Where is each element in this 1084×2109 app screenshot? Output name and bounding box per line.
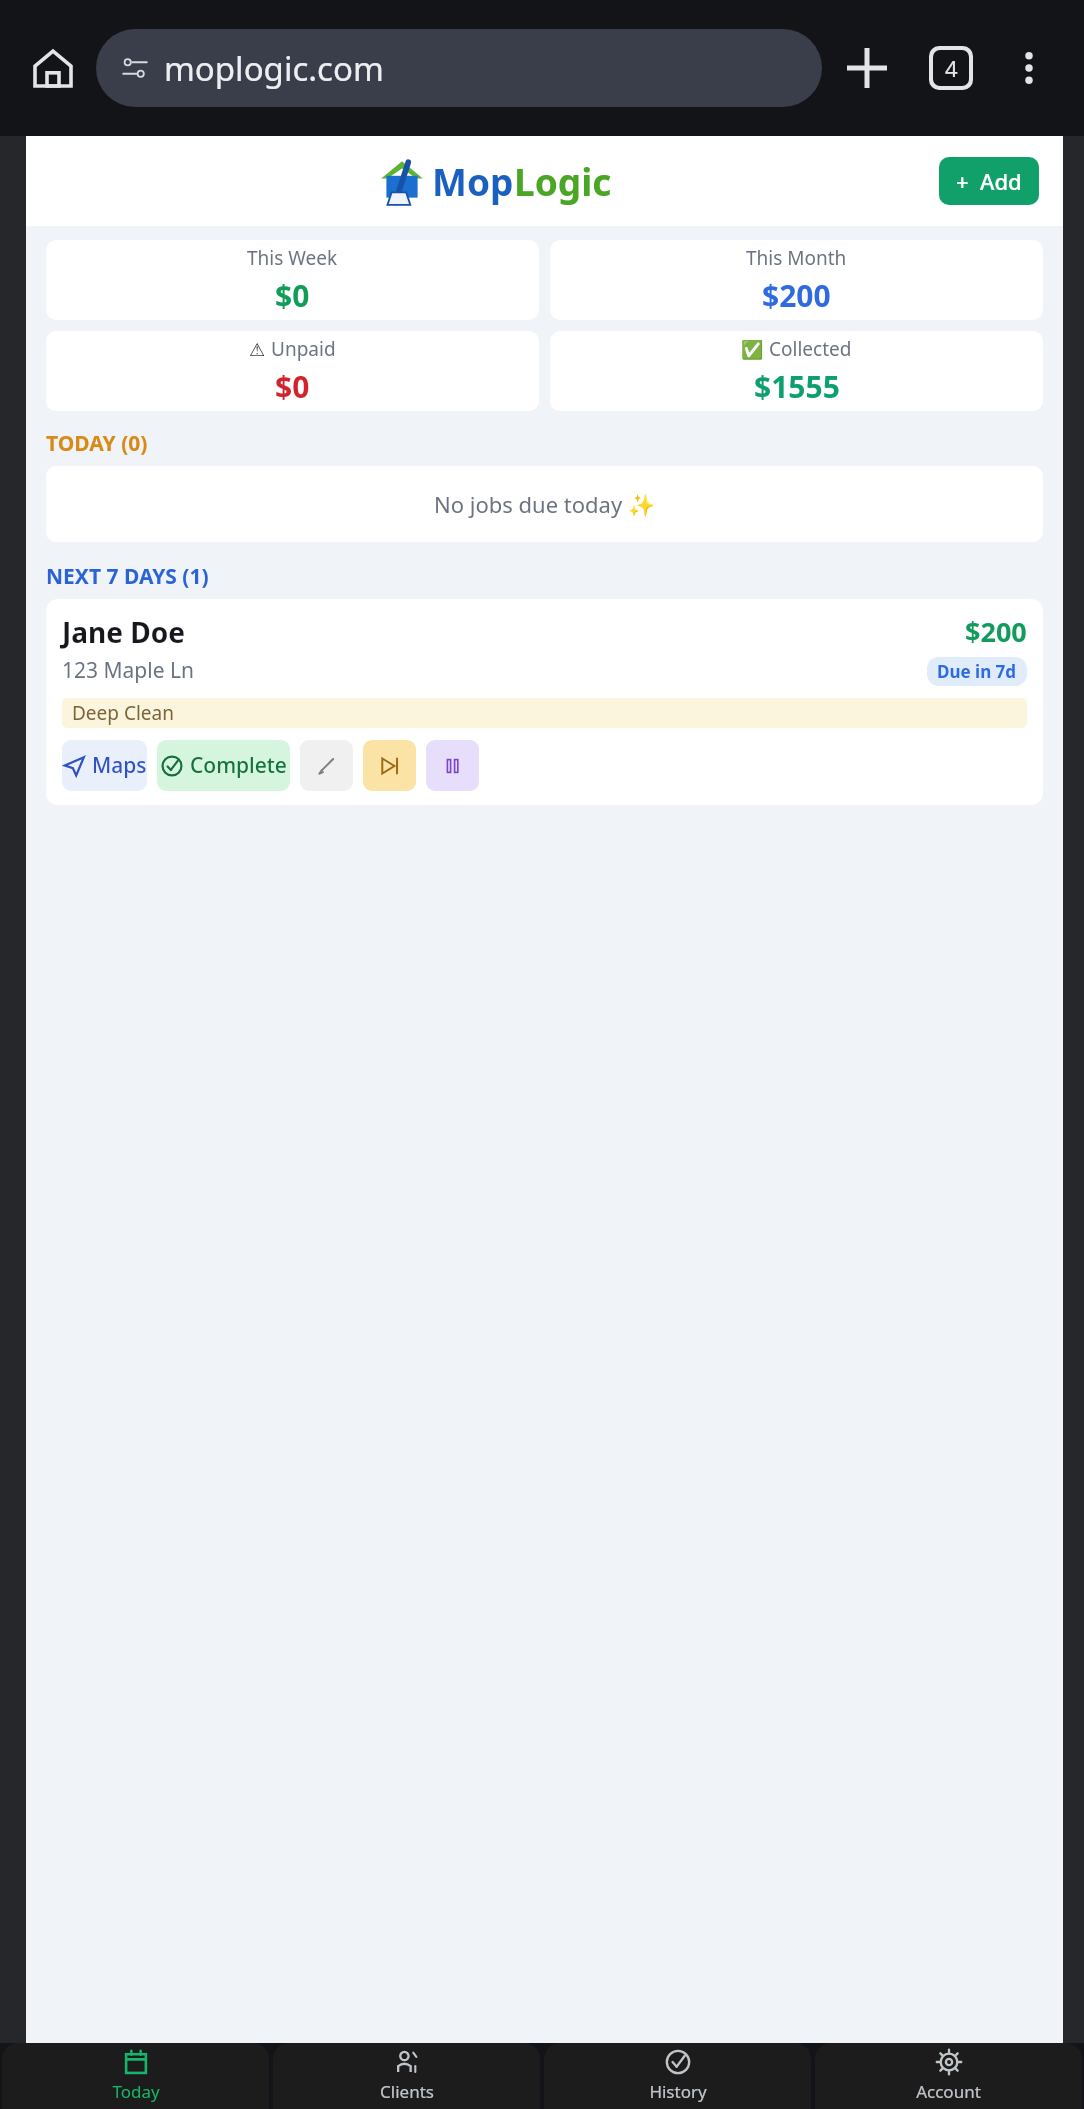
staticText: Due in 7d [937, 660, 1017, 683]
staticText: $200 [965, 613, 1027, 650]
button[interactable]: This Month [550, 240, 1043, 320]
staticText: $0 [275, 275, 310, 316]
button[interactable]: Pause [426, 740, 479, 791]
button[interactable]: + Add [939, 157, 1039, 205]
staticText: Complete [190, 751, 287, 780]
button[interactable]: moplogic.com [96, 29, 822, 107]
staticText: 4 [945, 53, 958, 83]
staticText: Jane Doe [62, 613, 185, 651]
button[interactable]: Jane Doe [46, 599, 1043, 805]
button[interactable]: Edit [300, 740, 353, 791]
button[interactable]: Home [22, 37, 84, 99]
staticText: Deep Clean [72, 700, 174, 726]
staticText: No jobs due today ✨ [434, 489, 656, 519]
staticText: Account [916, 2080, 981, 2103]
staticText: NEXT 7 DAYS (1) [46, 562, 209, 591]
button[interactable]: ⚠️ [46, 331, 539, 411]
button[interactable]: New tab [832, 33, 902, 103]
staticText: ⚠️ [249, 339, 266, 360]
button[interactable]: This Week [46, 240, 539, 320]
staticText: Unpaid [271, 336, 336, 362]
button[interactable]: No jobs due today ✨ [46, 466, 1043, 542]
button[interactable]: Clients [273, 2043, 540, 2109]
button[interactable]: More options [996, 35, 1062, 101]
staticText: moplogic.com [164, 46, 384, 91]
staticText: 123 Maple Ln [62, 656, 194, 685]
button[interactable]: Today [2, 2043, 269, 2109]
button[interactable]: ✅ [550, 331, 1043, 411]
staticText: Maps [92, 751, 147, 780]
staticText: $1555 [754, 366, 840, 407]
staticText: This Week [247, 245, 338, 271]
staticText: Today [112, 2080, 160, 2103]
staticText: Logic [514, 156, 612, 206]
staticText: $200 [762, 275, 831, 316]
staticText: This Month [746, 245, 847, 271]
staticText: + Add [956, 166, 1022, 196]
staticText: History [649, 2080, 707, 2103]
staticText: TODAY (0) [46, 429, 148, 458]
staticText: $0 [275, 366, 310, 407]
button[interactable]: Complete [157, 740, 290, 791]
staticText: Clients [380, 2080, 434, 2103]
staticText: Mop [432, 156, 514, 206]
button[interactable]: History [544, 2043, 811, 2109]
button[interactable]: Tabs: 4 [916, 33, 986, 103]
staticText: ✅ [741, 339, 764, 360]
button[interactable]: Mop [376, 155, 612, 207]
button[interactable]: Account [815, 2043, 1082, 2109]
staticText: Collected [769, 336, 852, 362]
button[interactable]: Maps [62, 740, 147, 791]
button[interactable]: Skip [363, 740, 416, 791]
